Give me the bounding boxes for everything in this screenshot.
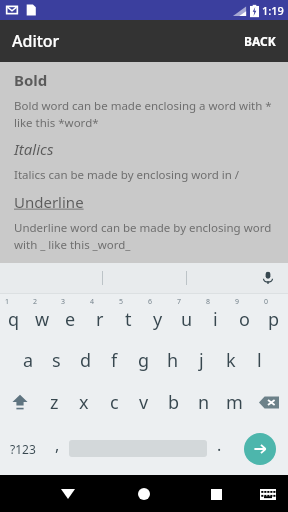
button[interactable]: c (99, 381, 129, 423)
staticText: 5 (119, 297, 124, 307)
staticText: 8 (206, 297, 211, 307)
staticText: x (79, 390, 89, 415)
button[interactable]: 1 (0, 294, 28, 339)
staticText: Underline (14, 192, 84, 212)
button[interactable]: 9 (230, 294, 259, 339)
staticText: 6 (148, 297, 153, 307)
staticText: n (198, 390, 210, 415)
button[interactable]: d (71, 339, 100, 381)
staticText: 9 (235, 297, 240, 307)
staticText: Italics (14, 139, 54, 159)
staticText: ?123 (10, 441, 36, 457)
button[interactable]: , (45, 423, 69, 474)
button[interactable]: Shift (0, 381, 39, 423)
staticText: o (239, 307, 250, 332)
button[interactable]: 5 (114, 294, 143, 339)
button[interactable]: 6 (143, 294, 172, 339)
button[interactable]: Recent apps (198, 476, 234, 512)
staticText: 7 (177, 297, 182, 307)
button[interactable]: k (216, 339, 245, 381)
button[interactable]: 3 (56, 294, 85, 339)
button[interactable]: 2 (28, 294, 56, 339)
staticText: Bold (14, 70, 48, 90)
button[interactable]: Voice input (254, 264, 282, 292)
staticText: p (268, 307, 280, 332)
staticText: . (217, 434, 222, 456)
staticText: 0 (264, 297, 269, 307)
staticText: e (65, 307, 76, 332)
button[interactable]: j (187, 339, 216, 381)
button[interactable]: . (207, 423, 231, 474)
button[interactable]: 7 (172, 294, 201, 339)
staticText: , (55, 434, 60, 456)
button[interactable]: 8 (201, 294, 230, 339)
staticText: 2 (33, 297, 38, 307)
button[interactable]: Back (50, 476, 86, 512)
button[interactable]: ?123 (0, 423, 45, 474)
staticText: 4 (90, 297, 95, 307)
button[interactable]: x (69, 381, 99, 423)
staticText: i (213, 307, 218, 332)
button[interactable]: 0 (259, 294, 288, 339)
button[interactable]: n (189, 381, 219, 423)
staticText: Aditor (12, 30, 60, 52)
button[interactable]: b (159, 381, 189, 423)
button[interactable]: Enter (231, 423, 288, 474)
staticText: l (257, 348, 262, 373)
button[interactable]: Switch keyboard (253, 479, 283, 509)
staticText: j (199, 348, 204, 373)
staticText: g (138, 348, 150, 373)
staticText: k (226, 348, 236, 373)
staticText: b (168, 390, 180, 415)
staticText: BACK (244, 33, 276, 49)
staticText: c (110, 390, 119, 415)
staticText: h (167, 348, 179, 373)
button[interactable]: l (245, 339, 274, 381)
button[interactable]: Backspace (249, 381, 288, 423)
button[interactable]: s (42, 339, 71, 381)
button[interactable]: g (129, 339, 158, 381)
staticText: w (35, 307, 50, 332)
button[interactable]: 4 (85, 294, 114, 339)
staticText: v (139, 390, 149, 415)
button[interactable]: z (39, 381, 69, 423)
staticText: f (111, 348, 118, 373)
staticText: t (125, 307, 132, 332)
button[interactable]: Home (126, 476, 162, 512)
staticText: Underline word can be made by enclosing … (14, 220, 274, 252)
staticText: Bold word can be made enclosing a word w… (14, 98, 274, 130)
staticText: r (96, 307, 104, 332)
button[interactable]: a (14, 339, 42, 381)
button[interactable]: Space (69, 423, 207, 474)
staticText: z (50, 390, 59, 415)
staticText: 1:19 (262, 3, 284, 18)
button[interactable]: h (158, 339, 187, 381)
staticText: d (80, 348, 92, 373)
staticText: q (8, 307, 20, 332)
staticText: 1 (5, 297, 10, 307)
staticText: y (153, 307, 163, 332)
staticText: a (23, 348, 34, 373)
staticText: m (226, 390, 243, 415)
staticText: s (52, 348, 61, 373)
staticText: u (181, 307, 193, 332)
staticText: Italics can be made by enclosing word in… (14, 167, 240, 183)
button[interactable]: v (129, 381, 159, 423)
staticText: 3 (61, 297, 66, 307)
button[interactable]: f (100, 339, 129, 381)
button[interactable]: m (219, 381, 249, 423)
button[interactable]: BACK (232, 23, 288, 59)
